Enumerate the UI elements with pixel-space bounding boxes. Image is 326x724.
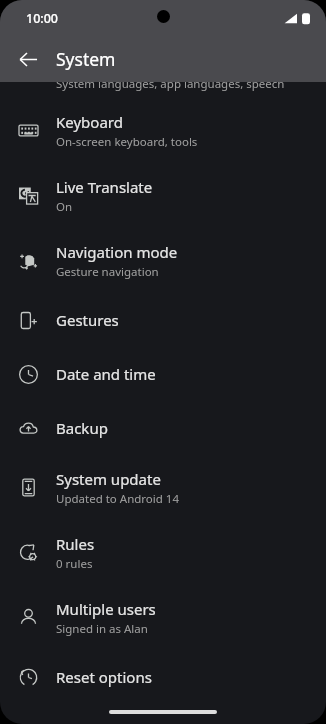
staticText: Updated to Android 14 [56, 491, 179, 507]
staticText: Live Translate [56, 177, 153, 197]
staticText: Navigation mode [56, 242, 178, 262]
staticText: 10:00 [26, 10, 59, 27]
button[interactable]: Live Translate [0, 163, 326, 228]
button[interactable]: System update [0, 455, 326, 520]
staticText: System [56, 47, 116, 71]
staticText: Signed in as Alan [56, 621, 148, 637]
staticText: 0 rules [56, 556, 93, 572]
staticText: Multiple users [56, 599, 156, 619]
staticText: System update [56, 469, 161, 489]
button[interactable]: Keyboard [0, 98, 326, 163]
staticText: Date and time [56, 364, 156, 384]
staticText: Backup [56, 418, 108, 438]
button[interactable]: Gestures [0, 293, 326, 347]
staticText: Gestures [56, 310, 119, 330]
staticText: On-screen keyboard, tools [56, 134, 198, 150]
button[interactable]: Navigation mode [0, 228, 326, 293]
button[interactable]: Back [8, 39, 48, 79]
button[interactable]: Multiple users [0, 585, 326, 650]
staticText: Reset options [56, 667, 152, 687]
staticText: Gesture navigation [56, 264, 159, 280]
button[interactable]: Reset options [0, 650, 326, 704]
staticText: On [56, 199, 73, 215]
button[interactable]: Backup [0, 401, 326, 455]
staticText: Rules [56, 534, 95, 554]
button[interactable]: Date and time [0, 347, 326, 401]
button[interactable]: Rules [0, 520, 326, 585]
staticText: Keyboard [56, 112, 123, 132]
staticText: System languages, app languages, speech [56, 76, 285, 92]
